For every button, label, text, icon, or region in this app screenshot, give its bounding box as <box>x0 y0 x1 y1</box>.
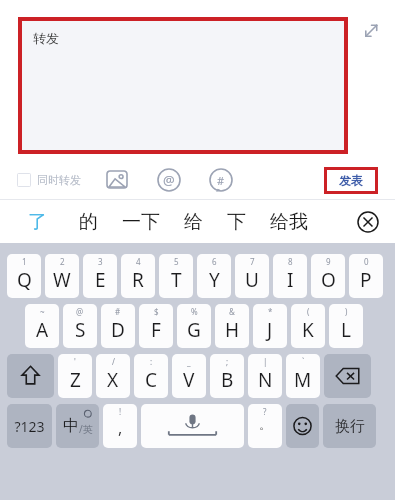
button[interactable]: Switch language <box>56 404 99 448</box>
staticText: _ <box>187 356 191 367</box>
button[interactable]: ` <box>286 354 320 398</box>
button[interactable]: 7 <box>235 254 269 298</box>
button[interactable]: * <box>253 304 287 348</box>
button[interactable]: ? <box>248 404 282 448</box>
staticText: J <box>267 317 273 343</box>
button[interactable]: : <box>134 354 168 398</box>
staticText: ; <box>226 356 229 367</box>
staticText: 0 <box>364 256 369 267</box>
staticText: 给 <box>184 210 203 234</box>
button[interactable]: ; <box>210 354 244 398</box>
button[interactable]: Topic <box>209 168 233 192</box>
button[interactable]: 下 <box>221 210 252 234</box>
button[interactable]: % <box>177 304 211 348</box>
button[interactable]: 0 <box>349 254 383 298</box>
button[interactable]: 转发 <box>22 21 344 150</box>
button[interactable]: Emoji <box>286 404 319 448</box>
button[interactable]: Shift <box>7 354 54 398</box>
button[interactable]: 发表 <box>327 170 375 191</box>
button[interactable]: ( <box>291 304 325 348</box>
staticText: 给我 <box>270 210 308 234</box>
staticText: 下 <box>227 210 246 234</box>
staticText: | <box>263 356 268 367</box>
button[interactable]: 一下 <box>116 210 166 234</box>
button[interactable]: _ <box>172 354 206 398</box>
staticText: $ <box>154 306 159 317</box>
staticText: 5 <box>174 256 179 267</box>
staticText: ' <box>74 356 76 367</box>
staticText: Y <box>209 267 220 293</box>
staticText: 6 <box>212 256 217 267</box>
button[interactable]: / <box>96 354 130 398</box>
button[interactable]: # <box>101 304 135 348</box>
button[interactable]: Space <box>141 404 244 448</box>
staticText: D <box>111 317 125 343</box>
staticText: 中 <box>63 416 79 436</box>
staticText: 同时转发 <box>37 173 81 187</box>
staticText: K <box>302 317 314 343</box>
staticText: / <box>112 356 115 367</box>
button[interactable]: 3 <box>83 254 117 298</box>
button[interactable]: ) <box>329 304 363 348</box>
staticText: @ <box>76 306 84 317</box>
staticText: L <box>341 317 351 343</box>
staticText: Q <box>17 267 32 293</box>
staticText: /英 <box>79 422 93 436</box>
button[interactable]: ! <box>103 404 137 448</box>
button[interactable]: ' <box>58 354 92 398</box>
staticText: 8 <box>288 256 293 267</box>
staticText: H <box>225 317 240 343</box>
staticText: ! <box>119 406 122 417</box>
staticText: 9 <box>326 256 331 267</box>
staticText: @ <box>163 171 175 189</box>
button[interactable]: Expand <box>358 18 384 44</box>
button[interactable]: 8 <box>273 254 307 298</box>
staticText: N <box>258 367 273 393</box>
staticText: 4 <box>136 256 141 267</box>
staticText: 了 <box>28 210 47 234</box>
button[interactable]: 的 <box>73 210 104 234</box>
staticText: ` <box>302 356 305 367</box>
button[interactable]: Mention <box>157 168 181 192</box>
staticText: X <box>107 367 119 393</box>
button[interactable]: 6 <box>197 254 231 298</box>
button[interactable]: 了 <box>22 210 53 234</box>
button[interactable]: 同时转发 <box>17 173 81 187</box>
staticText: 。 <box>259 417 271 432</box>
button[interactable]: 1 <box>7 254 41 298</box>
staticText: ? <box>263 406 267 417</box>
button[interactable]: 换行 <box>323 404 376 448</box>
button[interactable]: ?123 <box>7 404 52 448</box>
button[interactable]: 给 <box>178 210 209 234</box>
staticText: F <box>151 317 161 343</box>
button[interactable]: 2 <box>45 254 79 298</box>
button[interactable]: ~ <box>25 304 59 348</box>
button[interactable]: Add image <box>105 168 129 192</box>
button[interactable]: 5 <box>159 254 193 298</box>
staticText: S <box>75 317 86 343</box>
button[interactable]: | <box>248 354 282 398</box>
staticText: 7 <box>250 256 255 267</box>
staticText: # <box>115 306 121 317</box>
button[interactable]: $ <box>139 304 173 348</box>
staticText: B <box>221 367 234 393</box>
button[interactable]: Backspace <box>324 354 371 398</box>
staticText: % <box>191 306 198 317</box>
staticText: ?123 <box>14 417 45 436</box>
staticText: W <box>53 267 71 293</box>
staticText: C <box>145 367 158 393</box>
button[interactable]: 4 <box>121 254 155 298</box>
staticText: 1 <box>22 256 27 267</box>
staticText: O <box>321 267 336 293</box>
button[interactable]: 给我 <box>264 210 314 234</box>
staticText: U <box>245 267 259 293</box>
button[interactable]: Close suggestions <box>357 211 379 233</box>
staticText: 2 <box>60 256 65 267</box>
button[interactable]: 9 <box>311 254 345 298</box>
staticText: M <box>294 367 312 393</box>
staticText: 一下 <box>122 210 160 234</box>
button[interactable]: & <box>215 304 249 348</box>
staticText: ( <box>307 306 310 317</box>
staticText: V <box>183 367 195 393</box>
button[interactable]: @ <box>63 304 97 348</box>
